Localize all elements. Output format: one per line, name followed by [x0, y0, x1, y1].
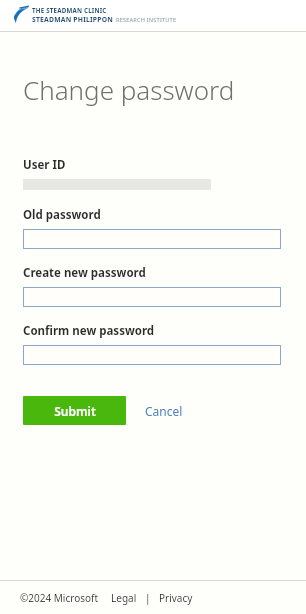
button[interactable] [23, 345, 281, 365]
staticText: RESEARCH INSTITUTE [116, 16, 177, 24]
button[interactable]: The Steadman Clinic home [13, 5, 177, 25]
staticText: STEADMAN PHILIPPON [32, 15, 114, 24]
staticText: Submit [54, 403, 96, 419]
staticText: THE STEADMAN CLINIC [32, 6, 107, 14]
button[interactable]: Privacy [159, 591, 193, 605]
staticText: ©2024 Microsoft [20, 591, 99, 605]
button[interactable] [23, 229, 281, 249]
staticText: Confirm new password [23, 323, 155, 339]
staticText: Create new password [23, 265, 146, 281]
button[interactable]: Submit [23, 396, 126, 425]
staticText: Old password [23, 207, 101, 223]
staticText: Change password [23, 72, 235, 107]
button[interactable]: Cancel [145, 403, 183, 419]
button[interactable]: Legal [111, 591, 137, 605]
staticText: Legal [111, 591, 137, 605]
staticText: Privacy [159, 591, 193, 605]
button[interactable] [23, 287, 281, 307]
staticText: | [145, 591, 151, 605]
staticText: User ID [23, 157, 66, 173]
staticText: Cancel [145, 403, 183, 419]
